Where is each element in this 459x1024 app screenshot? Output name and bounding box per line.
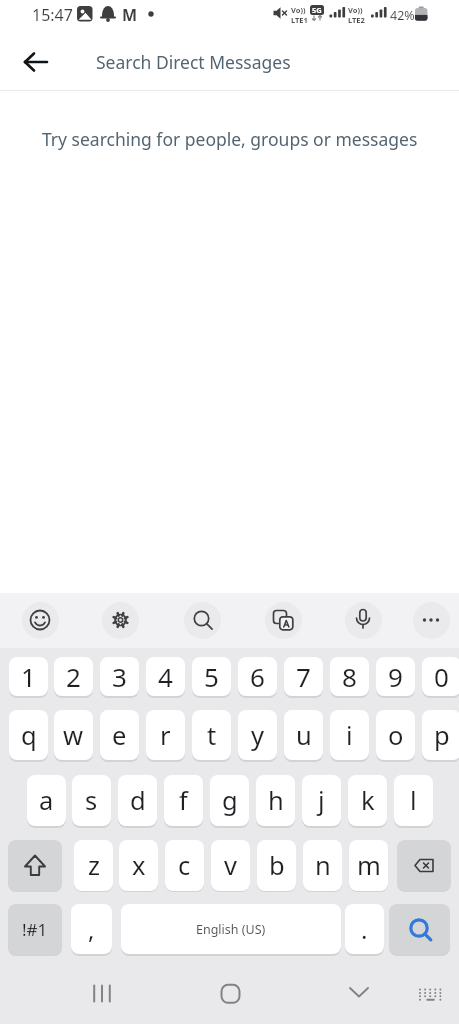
button[interactable] bbox=[265, 602, 302, 639]
staticText: t bbox=[207, 718, 217, 753]
button[interactable]: s bbox=[72, 775, 111, 826]
button[interactable]: 2 bbox=[54, 657, 93, 696]
button[interactable] bbox=[412, 973, 448, 1009]
button[interactable]: , bbox=[71, 904, 112, 954]
button[interactable]: v bbox=[211, 840, 250, 891]
button[interactable]: . bbox=[345, 904, 384, 954]
button[interactable]: h bbox=[256, 775, 295, 826]
staticText: v bbox=[224, 848, 237, 883]
staticText: y bbox=[251, 718, 265, 753]
button[interactable]: j bbox=[302, 775, 341, 826]
button[interactable] bbox=[82, 973, 122, 1013]
staticText: o bbox=[388, 718, 404, 753]
staticText: p bbox=[434, 718, 450, 753]
staticText: l bbox=[410, 783, 417, 818]
button[interactable]: 9 bbox=[376, 657, 415, 696]
staticText: Vo)) bbox=[348, 5, 363, 15]
staticText: u bbox=[296, 718, 312, 753]
button[interactable]: r bbox=[146, 710, 185, 760]
button[interactable]: g bbox=[210, 775, 249, 826]
staticText: . bbox=[361, 913, 368, 946]
staticText: z bbox=[88, 848, 100, 883]
staticText: 9 bbox=[388, 659, 403, 694]
button[interactable]: 8 bbox=[330, 657, 369, 696]
staticText: j bbox=[318, 783, 325, 818]
staticText: s bbox=[85, 783, 98, 818]
button[interactable] bbox=[210, 973, 250, 1013]
button[interactable]: o bbox=[376, 710, 415, 760]
button[interactable] bbox=[22, 602, 59, 639]
staticText: h bbox=[268, 783, 284, 818]
button[interactable]: w bbox=[54, 710, 93, 760]
button[interactable] bbox=[389, 904, 450, 954]
staticText: b bbox=[269, 848, 285, 883]
staticText: 15:47 bbox=[32, 4, 73, 26]
staticText: 2 bbox=[66, 659, 81, 694]
button[interactable]: 4 bbox=[146, 657, 185, 696]
staticText: Search Direct Messages bbox=[96, 50, 291, 74]
staticText: English (US) bbox=[196, 921, 266, 938]
staticText: c bbox=[178, 848, 191, 883]
button[interactable]: e bbox=[100, 710, 139, 760]
button[interactable] bbox=[8, 840, 62, 891]
staticText: LTE2 bbox=[348, 15, 365, 25]
staticText: 5G bbox=[312, 5, 322, 15]
button[interactable]: k bbox=[348, 775, 387, 826]
staticText: d bbox=[130, 783, 146, 818]
button[interactable] bbox=[102, 602, 139, 639]
staticText: 42% bbox=[390, 7, 415, 24]
button[interactable]: c bbox=[165, 840, 204, 891]
button[interactable] bbox=[340, 973, 380, 1013]
staticText: k bbox=[361, 783, 375, 818]
button[interactable]: !#1 bbox=[8, 904, 62, 954]
staticText: x bbox=[132, 848, 146, 883]
staticText: 0 bbox=[434, 659, 449, 694]
button[interactable] bbox=[413, 602, 450, 639]
staticText: n bbox=[315, 848, 331, 883]
button[interactable]: x bbox=[119, 840, 158, 891]
button[interactable]: u bbox=[284, 710, 323, 760]
staticText: Vo)) bbox=[291, 5, 306, 15]
staticText: 3 bbox=[112, 659, 127, 694]
staticText: g bbox=[222, 783, 238, 818]
button[interactable]: 0 bbox=[422, 657, 459, 696]
staticText: 1 bbox=[21, 659, 36, 694]
staticText: i bbox=[346, 718, 353, 753]
button[interactable]: 6 bbox=[238, 657, 277, 696]
button[interactable]: d bbox=[118, 775, 157, 826]
button[interactable]: m bbox=[349, 840, 388, 891]
button[interactable] bbox=[345, 602, 382, 639]
button[interactable]: q bbox=[9, 710, 48, 760]
button[interactable]: a bbox=[27, 775, 66, 826]
button[interactable] bbox=[184, 602, 221, 639]
staticText: w bbox=[63, 718, 84, 753]
button[interactable]: l bbox=[394, 775, 433, 826]
button[interactable]: 5 bbox=[192, 657, 231, 696]
staticText: q bbox=[21, 718, 37, 753]
staticText: Try searching for people, groups or mess… bbox=[42, 127, 418, 151]
staticText: e bbox=[112, 718, 127, 753]
staticText: 7 bbox=[296, 659, 311, 694]
button[interactable]: t bbox=[192, 710, 231, 760]
button[interactable]: n bbox=[303, 840, 342, 891]
button[interactable]: p bbox=[422, 710, 459, 760]
button[interactable] bbox=[397, 840, 451, 891]
button[interactable]: 1 bbox=[9, 657, 48, 696]
staticText: , bbox=[88, 913, 95, 946]
staticText: 5 bbox=[204, 659, 219, 694]
staticText: 8 bbox=[342, 659, 357, 694]
button[interactable]: English (US) bbox=[121, 904, 341, 954]
staticText: m bbox=[357, 848, 381, 883]
button[interactable] bbox=[16, 45, 56, 79]
staticText: 6 bbox=[250, 659, 265, 694]
button[interactable]: b bbox=[257, 840, 296, 891]
button[interactable]: 3 bbox=[100, 657, 139, 696]
button[interactable]: z bbox=[74, 840, 113, 891]
button[interactable]: f bbox=[164, 775, 203, 826]
button[interactable]: i bbox=[330, 710, 369, 760]
button[interactable]: 7 bbox=[284, 657, 323, 696]
button[interactable]: y bbox=[238, 710, 277, 760]
staticText: f bbox=[179, 783, 188, 818]
staticText: !#1 bbox=[22, 918, 48, 941]
button[interactable]: Search Direct Messages bbox=[96, 45, 436, 79]
